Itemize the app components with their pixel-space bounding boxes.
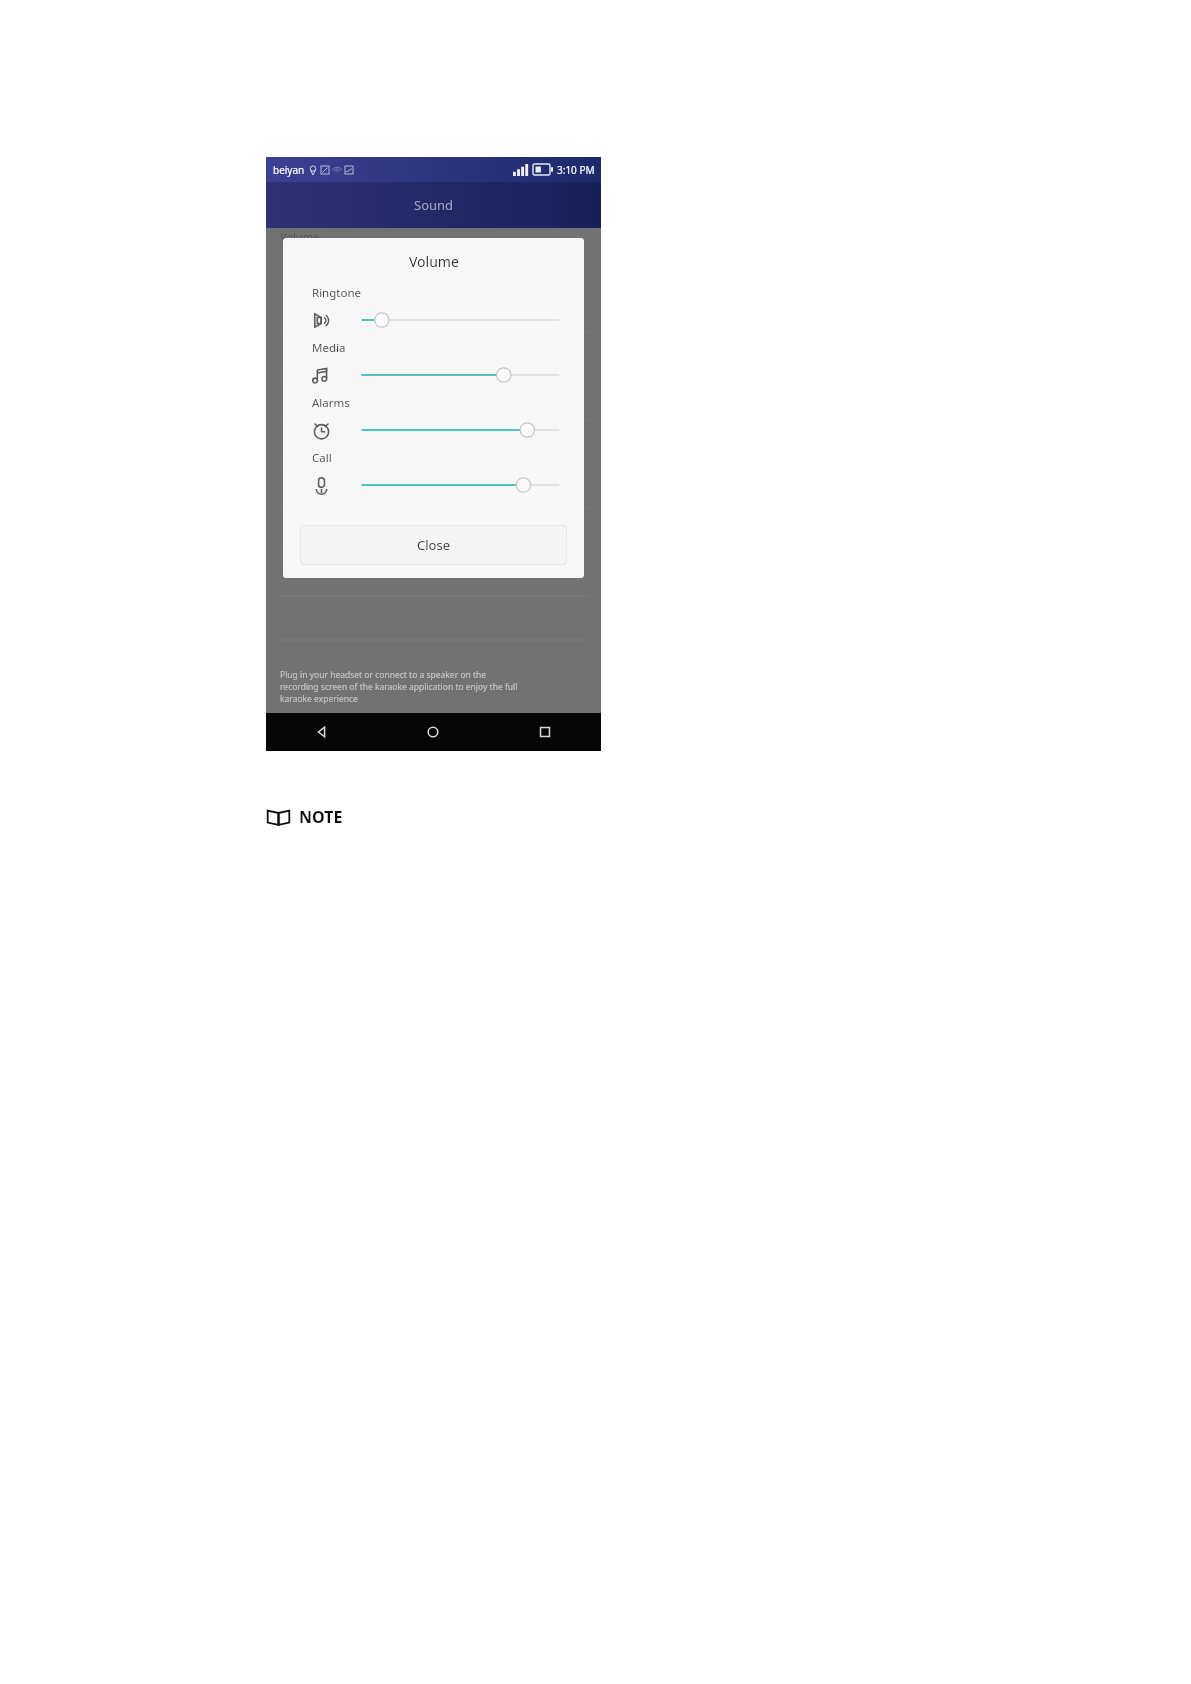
other: Media volume xyxy=(311,365,332,386)
other: Alarms volume xyxy=(311,420,332,441)
button[interactable]: Close xyxy=(300,525,567,565)
staticText: beiyan xyxy=(273,163,305,177)
button[interactable] xyxy=(355,307,566,333)
staticText: Close xyxy=(417,536,450,554)
button[interactable]: Home xyxy=(377,713,489,751)
staticText: 3:10 PM xyxy=(557,163,595,177)
staticText: Media xyxy=(312,340,346,356)
staticText: Volume xyxy=(280,229,320,244)
staticText: NOTE xyxy=(299,806,343,828)
button[interactable]: Back xyxy=(266,713,377,751)
staticText: Volume xyxy=(409,252,459,271)
button[interactable] xyxy=(355,472,566,498)
button[interactable] xyxy=(355,362,566,388)
staticText: karaoke experience xyxy=(280,693,358,705)
staticText: recording screen of the karaoke applicat… xyxy=(280,681,518,693)
staticText: Alarms xyxy=(312,395,350,411)
staticText: Plug in your headset or connect to a spe… xyxy=(280,669,487,681)
other: Ringtone volume xyxy=(311,310,332,331)
other: Call volume xyxy=(311,475,332,496)
staticText: Call xyxy=(312,450,332,466)
staticText: Sound xyxy=(414,196,454,214)
button[interactable]: Recents xyxy=(489,713,601,751)
button[interactable] xyxy=(355,417,566,443)
staticText: Ringtone xyxy=(312,285,362,301)
